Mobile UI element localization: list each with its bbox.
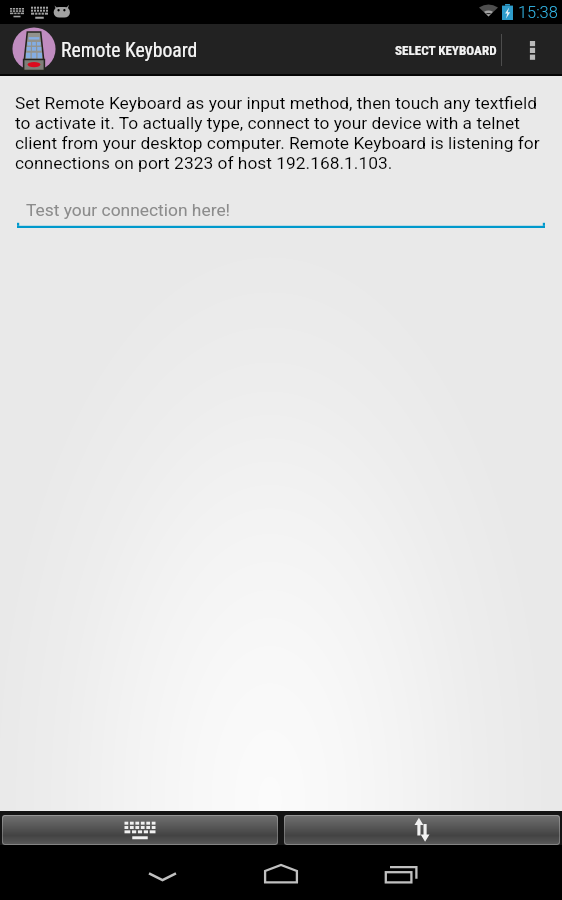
button[interactable]: Recent apps xyxy=(361,845,441,900)
staticText: Remote Keyboard xyxy=(61,39,198,62)
staticText: Test your connection here! xyxy=(26,200,231,220)
button[interactable]: Hide keyboard xyxy=(121,845,201,900)
staticText: SELECT KEYBOARD xyxy=(395,43,497,58)
staticText: Set Remote Keyboard as your input method… xyxy=(15,93,548,173)
staticText: 15:38 xyxy=(518,3,558,22)
button[interactable]: Show keyboard xyxy=(2,815,278,845)
button[interactable]: Scroll xyxy=(284,815,560,845)
button[interactable]: SELECT KEYBOARD xyxy=(377,24,501,76)
button[interactable]: Test your connection here! xyxy=(17,191,545,228)
button[interactable]: More options xyxy=(502,24,562,76)
button[interactable]: Home xyxy=(241,845,321,900)
